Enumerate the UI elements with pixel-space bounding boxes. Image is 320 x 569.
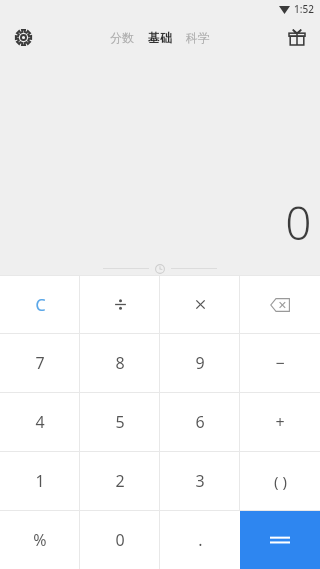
button[interactable]: 0 <box>80 511 160 569</box>
staticText: 基础 <box>148 30 172 45</box>
button[interactable]: + <box>240 393 320 451</box>
button[interactable]: 4 <box>0 393 80 451</box>
button[interactable]: 8 <box>80 334 160 392</box>
staticText: 8 <box>115 352 125 374</box>
staticText: 2 <box>115 470 125 492</box>
button[interactable]: 2 <box>80 452 160 510</box>
button[interactable]: 5 <box>80 393 160 451</box>
staticText: 5 <box>115 411 125 433</box>
button[interactable]: 分数 <box>106 26 138 49</box>
staticText: 科学 <box>186 30 210 45</box>
staticText: 4 <box>35 411 45 433</box>
staticText: 6 <box>195 411 205 433</box>
staticText: − <box>275 352 285 374</box>
button[interactable]: Multiply <box>160 276 240 333</box>
button[interactable]: 3 <box>160 452 240 510</box>
staticText: 1:52 <box>294 2 314 16</box>
button[interactable]: Backspace <box>240 276 320 333</box>
button[interactable]: Gift <box>280 20 314 54</box>
button[interactable]: . <box>160 511 240 569</box>
button[interactable]: Settings <box>6 20 40 54</box>
button[interactable]: C <box>0 276 80 333</box>
button[interactable]: − <box>240 334 320 392</box>
button[interactable]: History <box>151 262 169 275</box>
staticText: ( ) <box>274 471 287 491</box>
button[interactable]: 6 <box>160 393 240 451</box>
staticText: + <box>275 411 285 433</box>
staticText: 7 <box>35 352 45 374</box>
staticText: . <box>198 529 203 551</box>
button[interactable]: Equals <box>240 511 320 569</box>
staticText: 3 <box>195 470 205 492</box>
button[interactable]: 7 <box>0 334 80 392</box>
staticText: 分数 <box>110 30 134 45</box>
staticText: 9 <box>195 352 205 374</box>
button[interactable]: ( ) <box>240 452 320 510</box>
staticText: 0 <box>115 529 125 551</box>
staticText: C <box>35 294 46 316</box>
button[interactable]: 1 <box>0 452 80 510</box>
button[interactable]: Divide <box>80 276 160 333</box>
staticText: 1 <box>35 470 45 492</box>
button[interactable]: 科学 <box>182 26 214 49</box>
staticText: 0 <box>285 191 312 254</box>
button[interactable]: 基础 <box>144 26 176 49</box>
staticText: % <box>33 529 47 551</box>
button[interactable]: % <box>0 511 80 569</box>
button[interactable]: 9 <box>160 334 240 392</box>
